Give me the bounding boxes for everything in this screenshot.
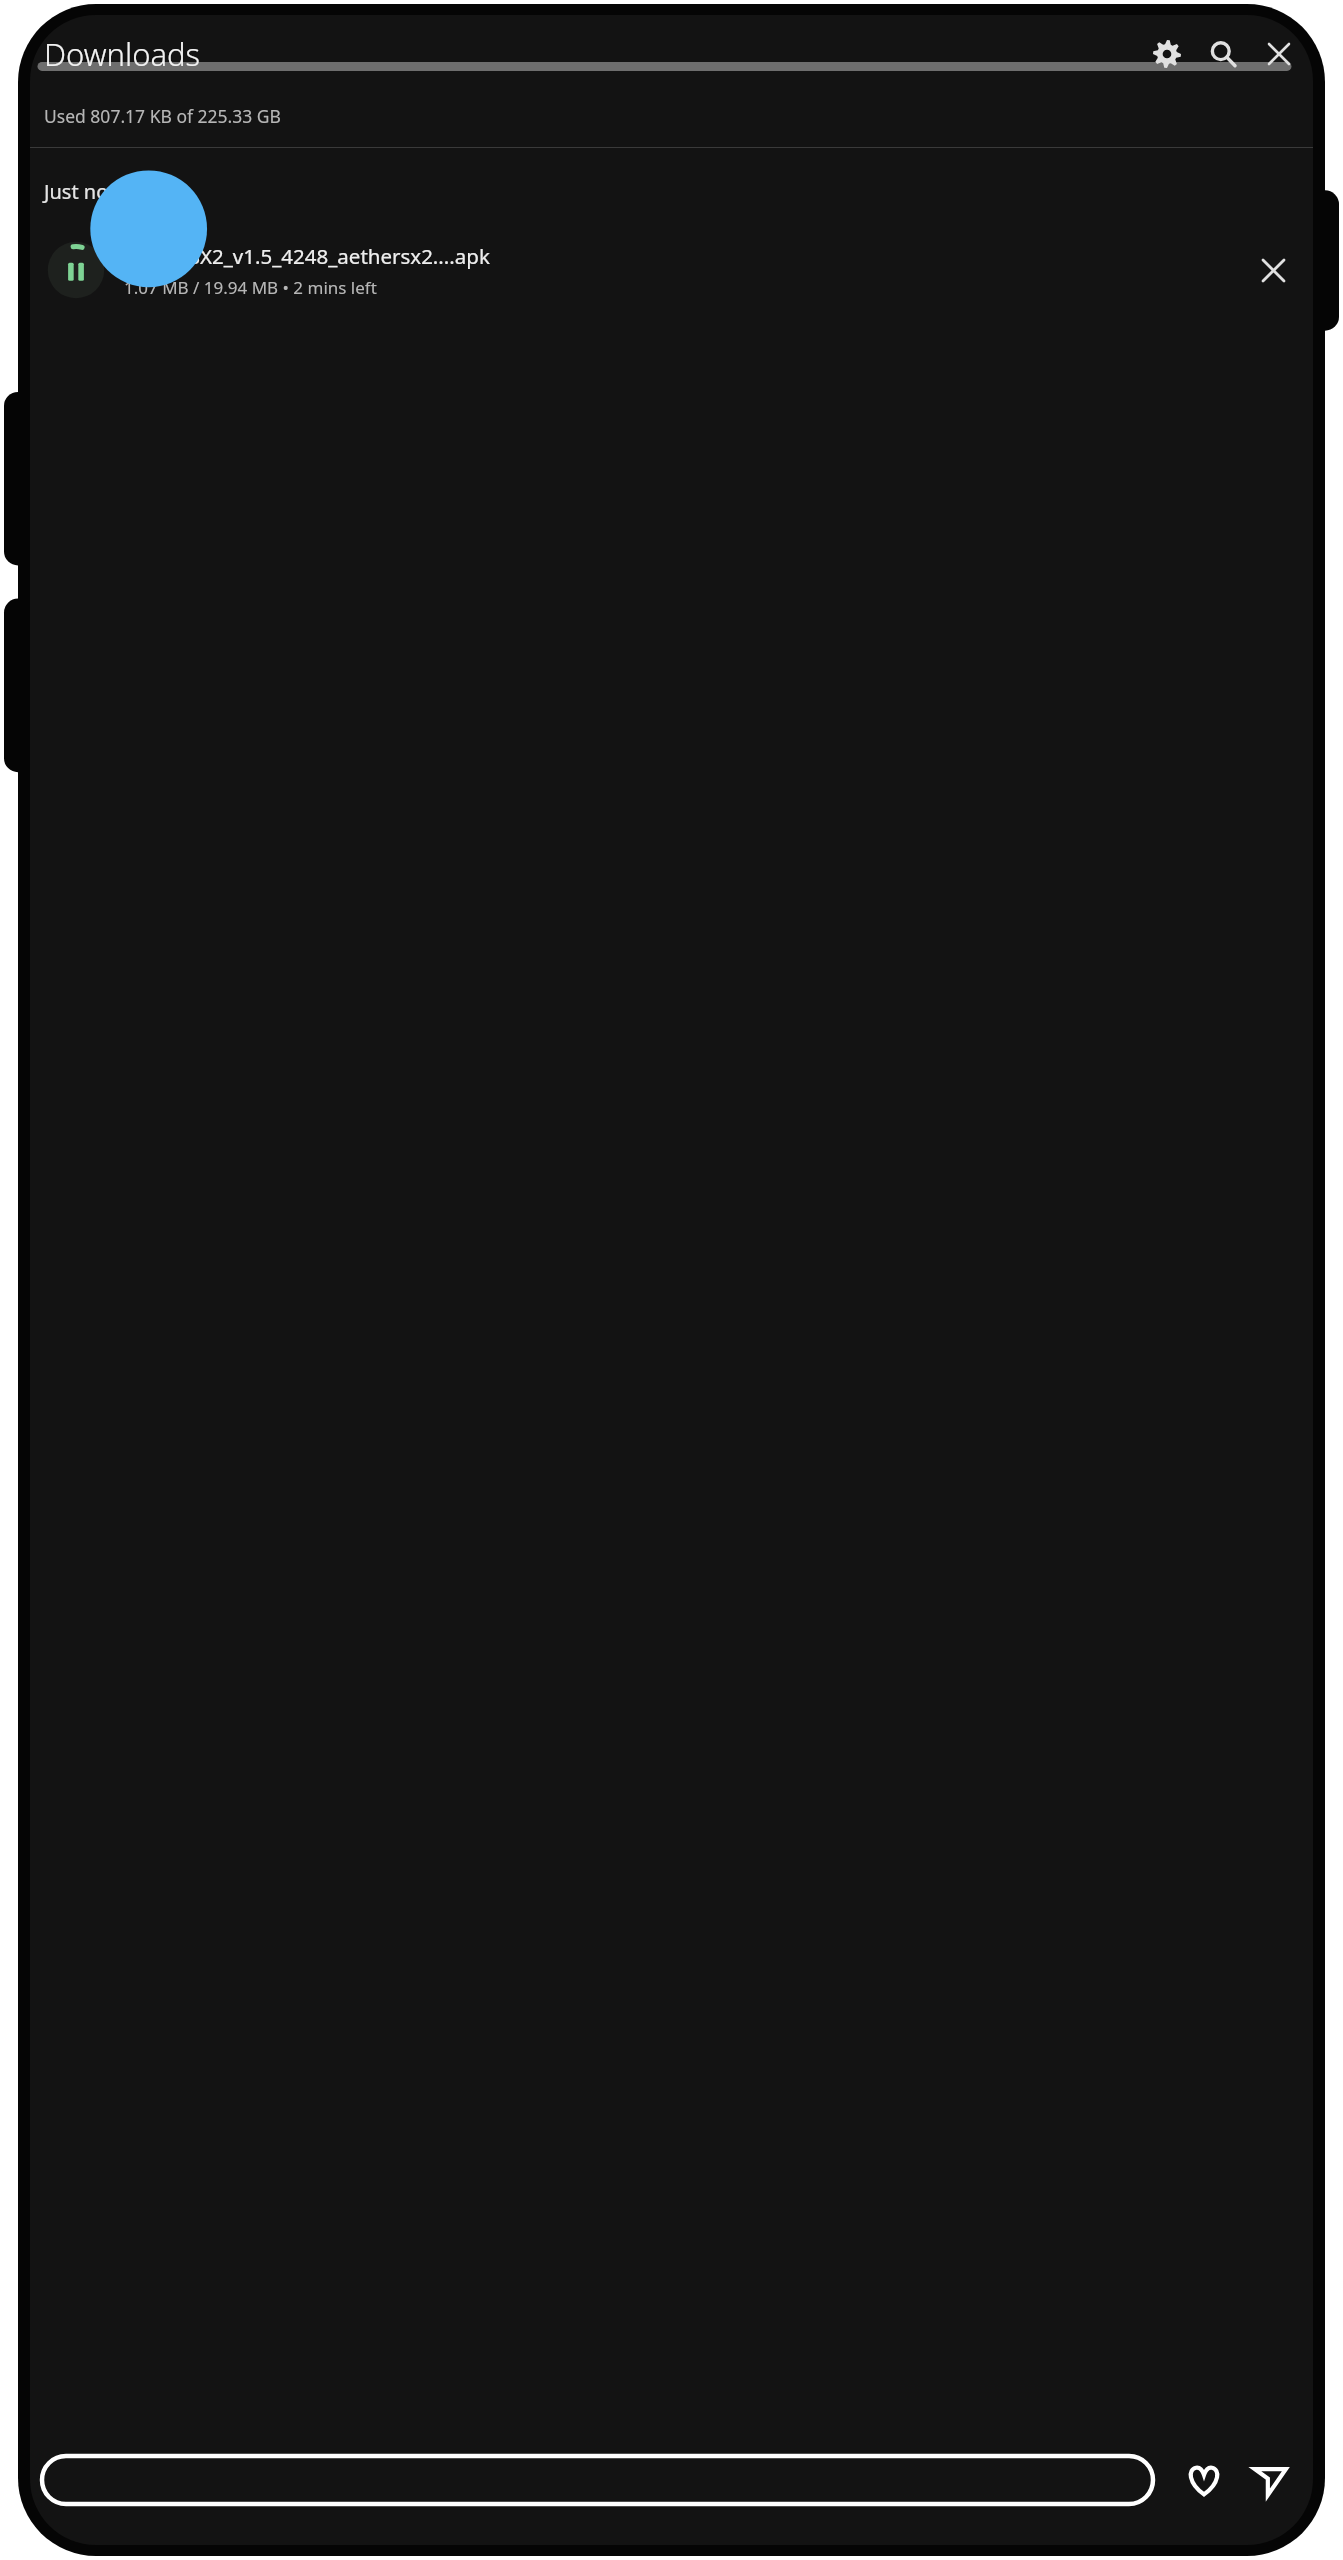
staticText: 1.07 MB / 19.94 MB • 2 mins left bbox=[124, 276, 377, 299]
button[interactable]: Pause download bbox=[30, 227, 1313, 313]
button[interactable]: Cancel download bbox=[1241, 238, 1305, 302]
staticText: AetherSX2_v1.5_4248_aethersx2....apk bbox=[124, 242, 490, 270]
button[interactable]: Close bbox=[1251, 26, 1307, 82]
button[interactable]: Share bbox=[1241, 2451, 1299, 2509]
button[interactable]: Pause download bbox=[40, 234, 112, 306]
button[interactable]: Settings bbox=[1139, 26, 1195, 82]
button[interactable]: Like bbox=[1175, 2451, 1233, 2509]
staticText: Downloads bbox=[44, 33, 201, 75]
staticText: Just now bbox=[44, 178, 124, 205]
button[interactable]: Comment bbox=[40, 2454, 1155, 2506]
button[interactable]: Used 807.17 KB of 225.33 GB bbox=[30, 85, 1313, 147]
staticText: Used 807.17 KB of 225.33 GB bbox=[44, 104, 281, 128]
button[interactable]: Search bbox=[1195, 26, 1251, 82]
